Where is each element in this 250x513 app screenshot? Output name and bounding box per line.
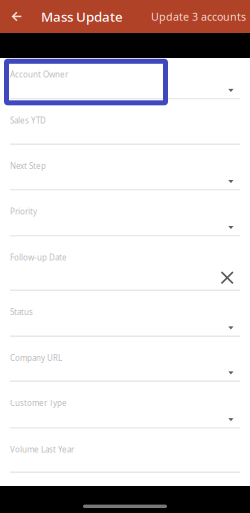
button[interactable]: Status [0, 291, 250, 337]
staticText: Customer Type [10, 397, 67, 408]
staticText: Account Owner [10, 69, 68, 80]
staticText: Update 3 accounts [151, 9, 246, 24]
button[interactable]: Priority [0, 191, 250, 237]
button[interactable]: Sales YTD [0, 99, 250, 145]
button[interactable]: Update 3 accounts [151, 9, 250, 24]
button[interactable]: Account Owner [0, 58, 250, 99]
staticText: Mass Update [41, 8, 123, 25]
staticText: Company URL [10, 352, 62, 363]
staticText: Follow-up Date [10, 252, 67, 263]
staticText: Status [10, 306, 33, 317]
button[interactable]: Volume Last Year [0, 429, 250, 473]
staticText: Priority [10, 206, 37, 217]
button[interactable]: Follow-up Date [0, 237, 250, 291]
button[interactable]: Customer Type [0, 382, 250, 429]
button[interactable]: Next Step [0, 145, 250, 191]
staticText: Sales YTD [10, 115, 46, 126]
button[interactable]: Company URL [0, 337, 250, 382]
staticText: Volume Last Year [10, 444, 74, 455]
button[interactable]: Back [0, 0, 33, 33]
staticText: Next Step [10, 160, 46, 171]
